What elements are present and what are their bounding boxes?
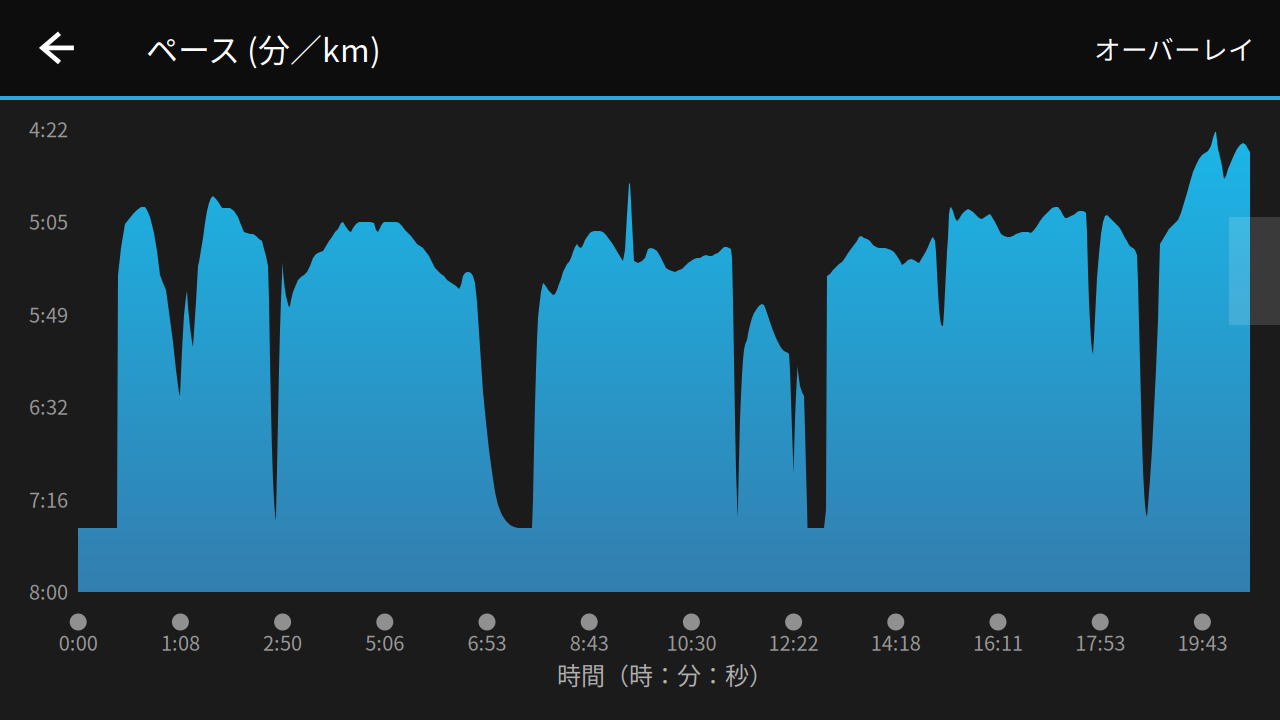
staticText: 19:43 (1177, 627, 1227, 656)
staticText: 12:22 (769, 627, 819, 656)
staticText: 6:32 (29, 391, 68, 420)
staticText: オーバーレイ (1094, 29, 1255, 67)
staticText: 時間（時：分：秒） (557, 657, 773, 691)
button[interactable]: ペース (分／km) (0, 0, 381, 96)
staticText: 1:08 (161, 627, 200, 656)
staticText: 17:53 (1075, 627, 1125, 656)
staticText: 8:00 (29, 576, 68, 605)
staticText: 5:05 (29, 206, 68, 235)
staticText: 5:49 (29, 299, 68, 328)
staticText: 8:43 (570, 627, 609, 656)
staticText: 7:16 (29, 484, 68, 513)
staticText: 6:53 (467, 627, 506, 656)
staticText: 16:11 (973, 627, 1023, 656)
staticText: 14:18 (871, 627, 921, 656)
button[interactable]: Back (0, 0, 64, 96)
button[interactable]: オーバーレイ (1078, 0, 1271, 96)
staticText: 5:06 (365, 627, 404, 656)
staticText: ペース (分／km) (146, 25, 381, 71)
staticText: 4:22 (29, 114, 68, 143)
staticText: 2:50 (263, 627, 302, 656)
staticText: 10:30 (666, 627, 716, 656)
staticText: 0:00 (59, 627, 98, 656)
